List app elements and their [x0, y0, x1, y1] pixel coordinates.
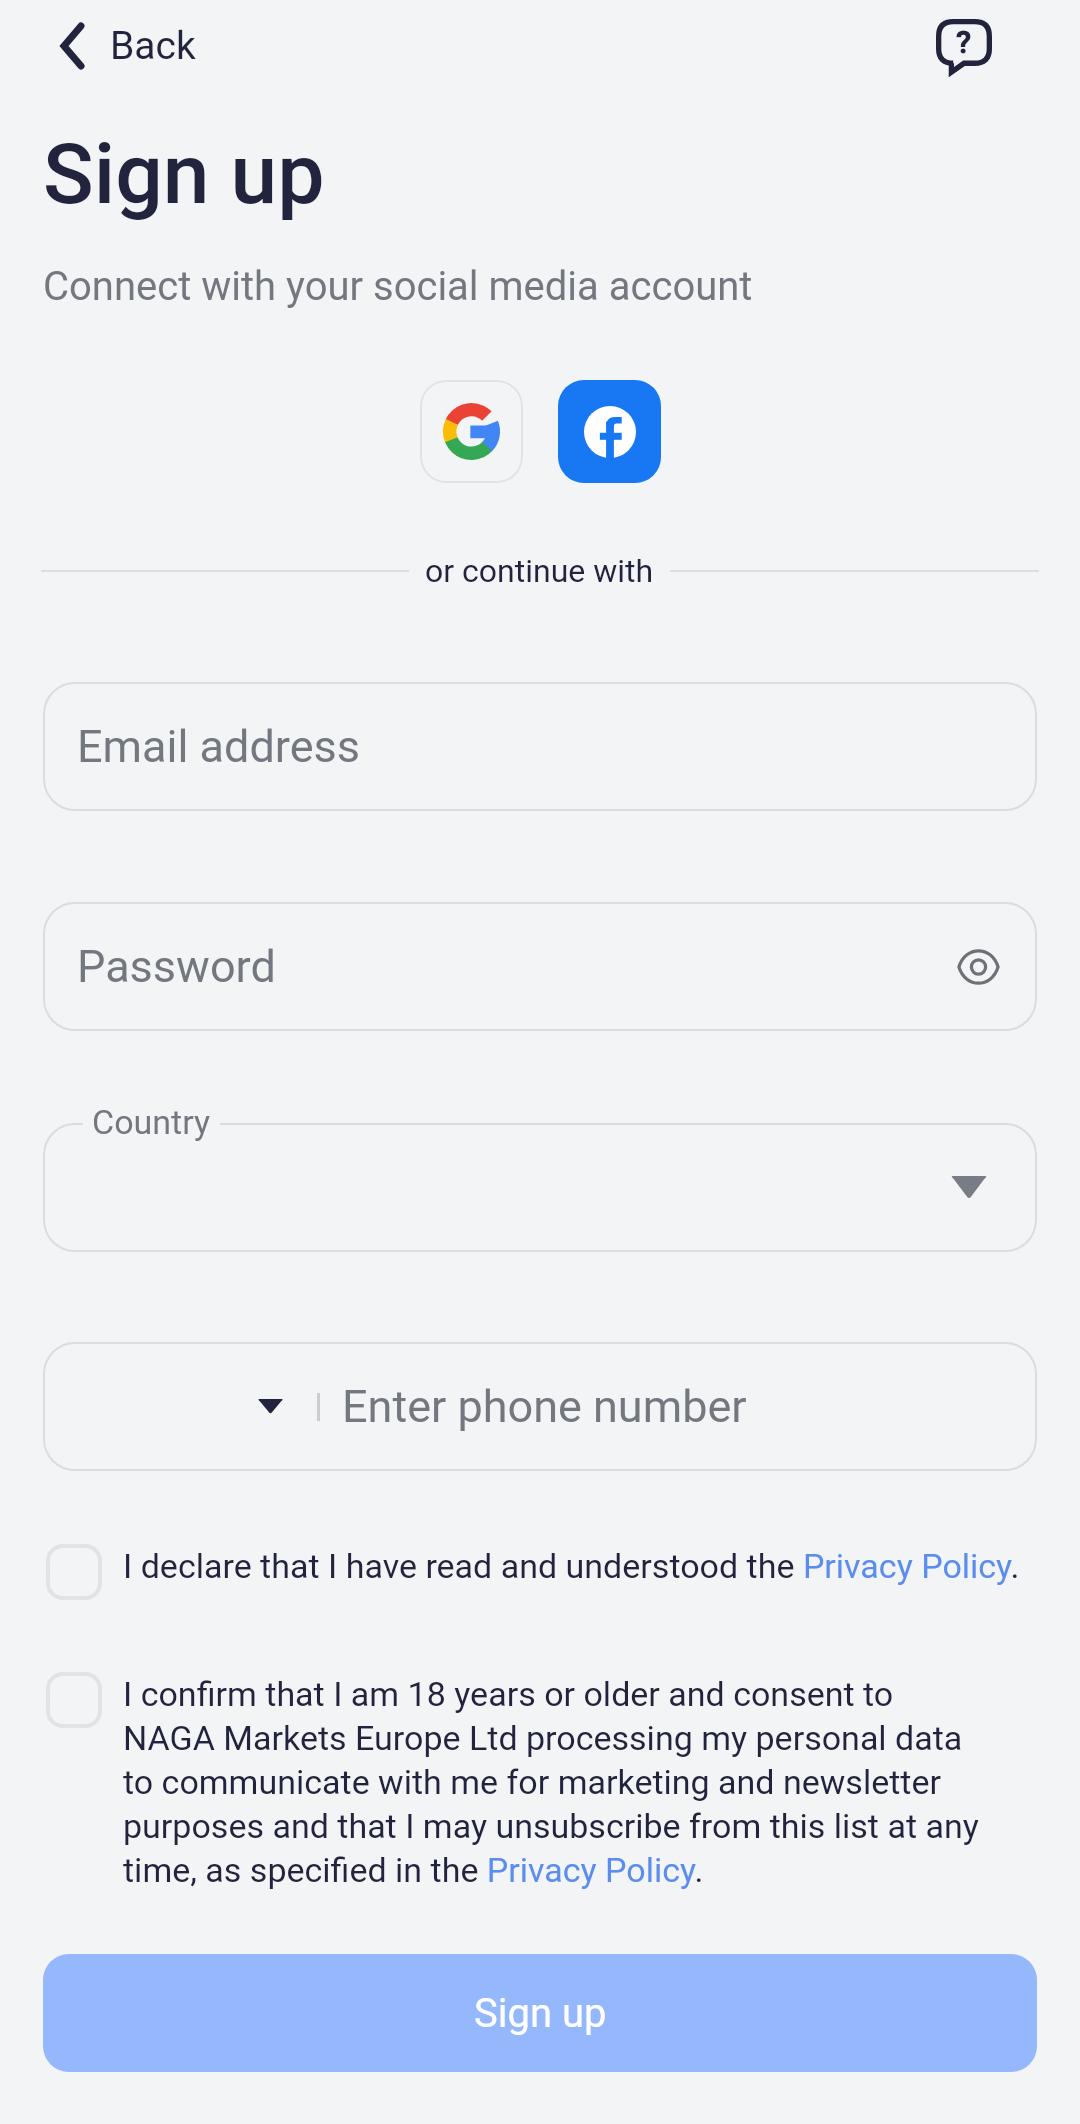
staticText: Sign up: [43, 125, 325, 223]
button[interactable]: I confirm that I am 18 years or older an…: [46, 1672, 1037, 1888]
button[interactable]: Sign up with Google: [420, 380, 523, 483]
staticText: Password: [77, 940, 276, 993]
button[interactable]: Password: [43, 902, 1037, 1031]
button[interactable]: Sign up with Facebook: [558, 380, 661, 483]
button[interactable]: Sign up: [43, 1954, 1037, 2072]
staticText: I declare that I have read and understoo…: [123, 1546, 1020, 1586]
button[interactable]: Email address: [43, 682, 1037, 811]
button[interactable]: [43, 1123, 1037, 1252]
staticText: Sign up: [474, 1990, 607, 2037]
staticText: Email address: [77, 720, 360, 773]
button[interactable]: Enter phone number: [43, 1342, 1037, 1471]
staticText: Country: [92, 1102, 211, 1142]
staticText: Connect with your social media account: [43, 263, 753, 310]
button[interactable]: I declare that I have read and understoo…: [46, 1544, 1037, 1600]
button[interactable]: Show password: [948, 937, 1008, 997]
staticText: Back: [110, 23, 196, 69]
staticText: ?: [956, 24, 972, 60]
button[interactable]: Back: [61, 0, 196, 92]
staticText: Enter phone number: [342, 1380, 747, 1433]
staticText: or continue with: [425, 552, 654, 590]
button[interactable]: Help: [928, 11, 1000, 83]
staticText: I confirm that I am 18 years or older an…: [123, 1674, 988, 1890]
